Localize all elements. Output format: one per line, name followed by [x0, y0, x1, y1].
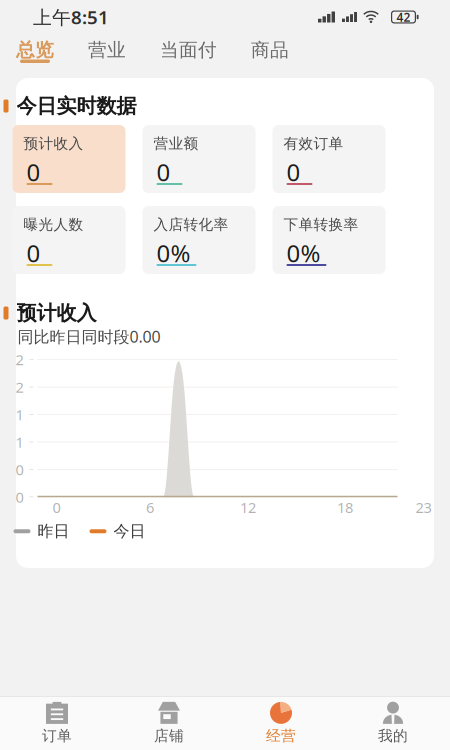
staticText: 总览 — [16, 38, 54, 61]
button[interactable]: 商品 — [234, 34, 306, 78]
staticText: 下单转换率 — [283, 215, 358, 233]
staticText: 经营 — [266, 727, 296, 745]
staticText: 曝光人数 — [23, 215, 83, 233]
staticText: 0 — [286, 156, 300, 188]
staticText: 同比昨日同时段0.00 — [17, 326, 160, 347]
staticText: 预计收入 — [23, 134, 83, 152]
staticText: 当面付 — [160, 38, 217, 61]
staticText: 0 — [15, 487, 23, 507]
button[interactable]: 营业额 — [142, 125, 255, 193]
staticText: 营业额 — [153, 134, 198, 152]
staticText: 入店转化率 — [153, 215, 228, 233]
staticText: 昨日 — [37, 521, 69, 541]
staticText: 12 — [240, 497, 256, 517]
staticText: 2 — [15, 377, 23, 397]
button[interactable]: 经营 — [225, 697, 337, 749]
staticText: 商品 — [251, 38, 289, 61]
staticText: 18 — [337, 497, 353, 517]
staticText: 营业 — [88, 38, 126, 61]
staticText: 今日 — [113, 521, 145, 541]
button[interactable]: 店铺 — [113, 697, 225, 749]
staticText: 有效订单 — [283, 134, 343, 152]
staticText: 0 — [26, 156, 40, 188]
staticText: 0% — [286, 237, 320, 269]
staticText: 1 — [15, 432, 23, 452]
button[interactable]: 有效订单 — [272, 125, 385, 193]
staticText: 2 — [15, 350, 23, 369]
staticText: 6 — [146, 497, 154, 517]
button[interactable]: 入店转化率 — [142, 206, 255, 274]
staticText: 0 — [52, 497, 60, 517]
staticText: 0 — [15, 460, 23, 479]
staticText: 预计收入 — [16, 301, 96, 325]
button[interactable]: 下单转换率 — [272, 206, 385, 274]
button[interactable]: 订单 — [1, 697, 113, 749]
staticText: 23 — [415, 497, 431, 517]
staticText: 我的 — [378, 727, 408, 745]
button[interactable]: 当面付 — [143, 34, 234, 78]
staticText: 42 — [396, 9, 410, 25]
button[interactable]: 我的 — [337, 697, 449, 749]
staticText: 1 — [15, 405, 23, 424]
staticText: 0 — [26, 237, 40, 269]
button[interactable]: 预计收入 — [12, 125, 125, 193]
staticText: 0 — [156, 156, 170, 188]
staticText: 今日实时数据 — [16, 94, 136, 118]
staticText: 店铺 — [154, 727, 184, 745]
button[interactable]: 总览 — [0, 34, 71, 78]
button[interactable]: 曝光人数 — [12, 206, 125, 274]
staticText: 上午8:51 — [33, 5, 109, 29]
staticText: 订单 — [42, 727, 72, 745]
staticText: 0% — [156, 237, 190, 269]
button[interactable]: 营业 — [71, 34, 143, 78]
